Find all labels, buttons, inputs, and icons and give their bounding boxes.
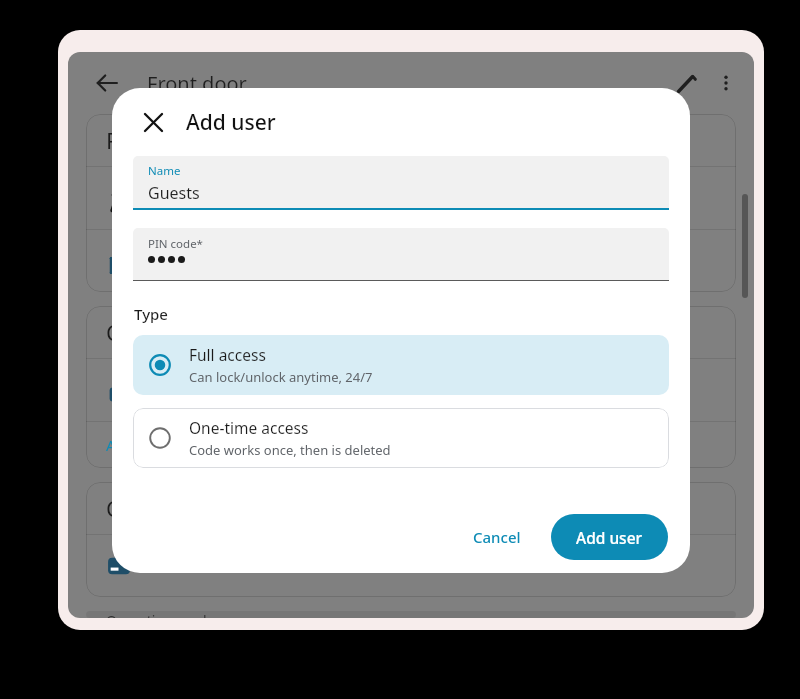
staticText: Name xyxy=(148,163,181,179)
button[interactable]: Cancel xyxy=(455,516,539,558)
button[interactable]: Back xyxy=(90,66,124,100)
staticText: One-time access xyxy=(189,417,309,438)
button[interactable] xyxy=(86,535,736,597)
staticText: Add user xyxy=(186,108,276,137)
staticText: Recent activity xyxy=(106,125,255,155)
staticText: Code works once, then is deleted xyxy=(189,441,391,459)
staticText: Guests xyxy=(148,182,200,204)
staticText: PIN code* xyxy=(148,236,203,252)
button[interactable]: Full access xyxy=(133,335,669,395)
staticText: Full access xyxy=(189,344,266,365)
button[interactable] xyxy=(86,230,736,292)
staticText: Can lock/unlock anytime, 24/7 xyxy=(189,368,373,386)
button[interactable]: PIN code* xyxy=(133,228,669,280)
button[interactable]: Name xyxy=(133,156,669,208)
staticText: Add user xyxy=(106,435,170,455)
button[interactable]: Operating mode xyxy=(86,611,736,618)
staticText: Type xyxy=(134,304,168,324)
button[interactable]: Close xyxy=(134,103,172,141)
button[interactable]: Edit xyxy=(666,63,706,103)
staticText: Configuration xyxy=(106,493,249,523)
button[interactable]: Back xyxy=(68,52,754,114)
staticText: Control xyxy=(106,317,183,347)
staticText: Add user xyxy=(576,527,643,548)
button[interactable]: One-time access xyxy=(133,408,669,468)
staticText: Operating mode xyxy=(106,611,215,618)
button[interactable]: Add user xyxy=(551,514,668,560)
staticText: Front door xyxy=(147,70,247,97)
staticText: Cancel xyxy=(473,527,521,547)
button[interactable] xyxy=(86,167,736,229)
button[interactable] xyxy=(86,359,736,421)
button[interactable]: More options xyxy=(706,63,746,103)
